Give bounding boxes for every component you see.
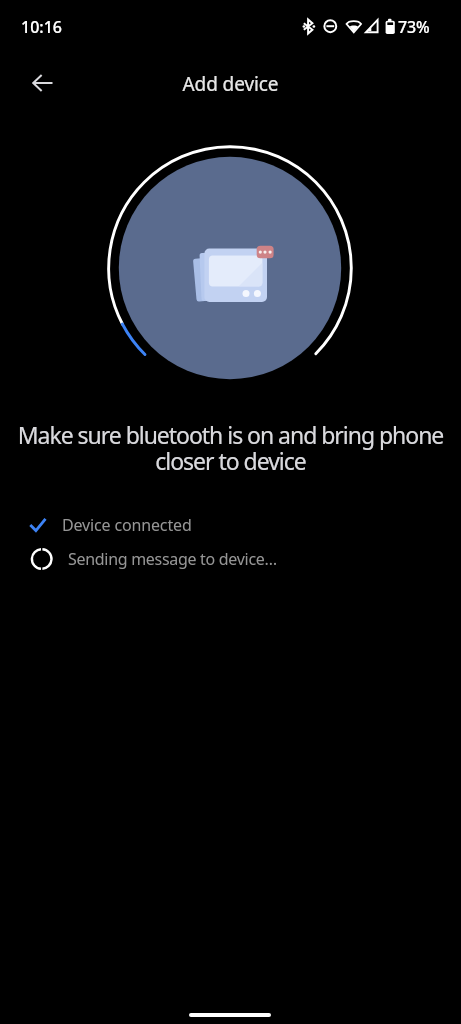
button[interactable]: Device connected [24,508,192,542]
staticText: Make sure bluetooth is on and bring phon… [4,419,457,477]
staticText: 10:16 [21,16,62,38]
staticText: Device connected [62,514,192,536]
staticText: Add device [0,71,461,97]
button[interactable]: Back [20,61,64,105]
staticText: Sending message to device… [68,548,277,570]
staticText: 73% [398,16,430,38]
button[interactable]: Sending message to device… [24,542,277,576]
